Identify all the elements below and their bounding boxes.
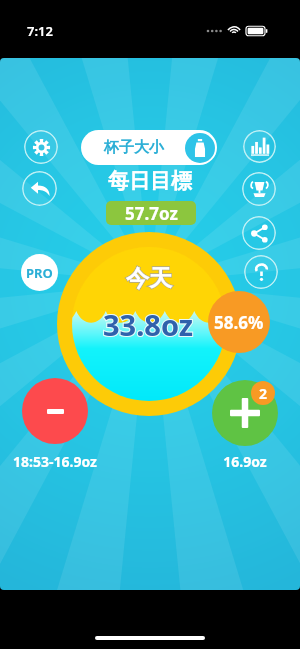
- button[interactable]: PRO: [21, 254, 58, 291]
- button[interactable]: 58.6%: [208, 291, 270, 353]
- button[interactable]: Settings: [24, 130, 58, 164]
- staticText: PRO: [26, 264, 53, 282]
- button[interactable]: Achievements: [242, 172, 276, 206]
- staticText: 57.7oz: [125, 202, 178, 225]
- staticText: 每日目標: [108, 168, 192, 194]
- button[interactable]: Help: [244, 255, 278, 289]
- staticText: 7:12: [27, 22, 53, 40]
- staticText: 33.8oz: [103, 305, 194, 344]
- staticText: 今天: [126, 264, 172, 293]
- button[interactable]: Remove: [22, 378, 88, 444]
- staticText: 今天: [126, 264, 172, 293]
- staticText: 33.8oz: [103, 305, 194, 344]
- staticText: 16.9oz: [202, 452, 288, 471]
- staticText: 58.6%: [214, 311, 264, 334]
- button[interactable]: Share: [242, 216, 276, 250]
- button[interactable]: Today's progress: [57, 232, 241, 416]
- button[interactable]: Statistics: [243, 130, 276, 163]
- button[interactable]: 杯子大小: [81, 130, 217, 165]
- staticText: 2: [259, 384, 268, 403]
- button[interactable]: Undo: [22, 171, 57, 206]
- staticText: 杯子大小: [104, 138, 164, 157]
- staticText: 18:53-16.9oz: [12, 452, 98, 471]
- button[interactable]: Add: [212, 380, 278, 446]
- button[interactable]: 57.7oz: [106, 201, 196, 225]
